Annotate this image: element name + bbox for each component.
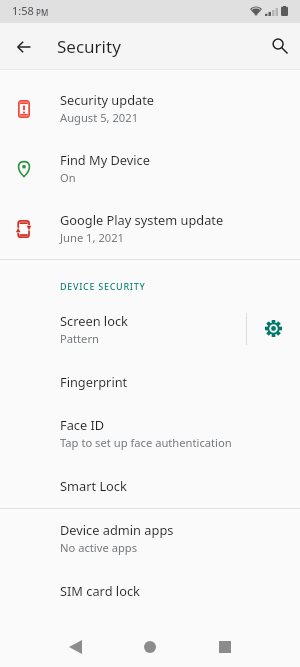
staticText: Security update xyxy=(60,91,155,108)
staticText: SIM card lock xyxy=(60,582,140,599)
staticText: Tap to set up face authentication xyxy=(60,435,232,450)
staticText: Find My Device xyxy=(60,151,150,168)
button[interactable]: Smart Lock xyxy=(0,464,300,508)
button[interactable]: Screen lock settings xyxy=(247,305,300,355)
button[interactable]: Back xyxy=(9,32,39,62)
button[interactable]: Face ID xyxy=(0,404,300,464)
staticText: 1:58 xyxy=(12,3,34,18)
button[interactable]: Screen lock xyxy=(0,300,300,360)
staticText: PM xyxy=(36,7,49,18)
staticText: Security xyxy=(57,35,121,58)
staticText: No active apps xyxy=(60,540,138,555)
button[interactable]: SIM card lock xyxy=(0,569,300,613)
staticText: On xyxy=(60,170,76,185)
staticText: Pattern xyxy=(60,331,99,346)
button[interactable]: Security update xyxy=(0,79,300,139)
button[interactable]: Search xyxy=(265,32,295,62)
staticText: Device admin apps xyxy=(60,521,174,538)
button[interactable]: Fingerprint xyxy=(0,360,300,404)
button[interactable]: Recent apps xyxy=(210,632,240,662)
staticText: June 1, 2021 xyxy=(60,230,125,245)
staticText: August 5, 2021 xyxy=(60,110,139,125)
button[interactable]: Google Play system update xyxy=(0,199,300,259)
staticText: DEVICE SECURITY xyxy=(60,280,146,292)
staticText: Fingerprint xyxy=(60,373,128,390)
button[interactable]: Find My Device xyxy=(0,139,300,199)
button[interactable]: Device admin apps xyxy=(0,509,300,569)
staticText: Face ID xyxy=(60,416,105,433)
staticText: Screen lock xyxy=(60,312,128,329)
staticText: Smart Lock xyxy=(60,477,127,494)
staticText: Google Play system update xyxy=(60,211,224,228)
button[interactable]: Back xyxy=(60,632,90,662)
button[interactable]: Home xyxy=(135,632,165,662)
